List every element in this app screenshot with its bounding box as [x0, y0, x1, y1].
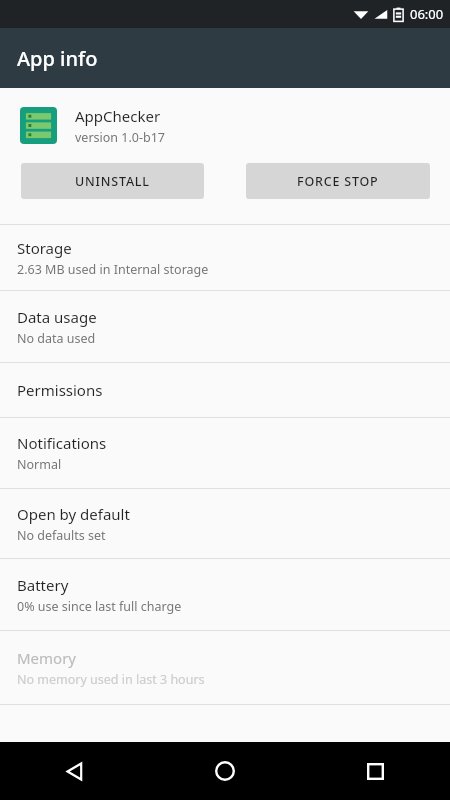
button[interactable]: Home [150, 742, 300, 800]
staticText: UNINSTALL [75, 173, 150, 190]
staticText: 0% use since last full charge [17, 598, 182, 615]
staticText: Normal [17, 456, 62, 473]
button[interactable]: Memory [0, 631, 450, 704]
button[interactable]: Open by default [0, 489, 450, 558]
button[interactable]: Data usage [0, 291, 450, 362]
button[interactable]: Permissions [0, 363, 450, 417]
staticText: No data used [17, 330, 96, 347]
staticText: Battery [17, 575, 69, 595]
staticText: No memory used in last 3 hours [17, 671, 205, 688]
staticText: 2.63 MB used in Internal storage [17, 261, 209, 278]
button[interactable]: UNINSTALL [21, 163, 204, 199]
staticText: Data usage [17, 307, 97, 327]
button[interactable]: Notifications [0, 418, 450, 488]
staticText: Storage [17, 238, 72, 258]
button[interactable]: Recent apps [300, 742, 450, 800]
staticText: No defaults set [17, 527, 106, 544]
staticText: 06:00 [410, 5, 444, 23]
button[interactable]: Battery [0, 559, 450, 630]
staticText: AppChecker [75, 106, 161, 126]
staticText: Notifications [17, 433, 107, 453]
staticText: version 1.0-b17 [75, 129, 165, 146]
staticText: Open by default [17, 504, 130, 524]
staticText: FORCE STOP [297, 173, 379, 190]
staticText: Memory [17, 648, 77, 668]
button[interactable]: Back [0, 742, 150, 800]
staticText: Permissions [17, 380, 103, 400]
staticText: App info [17, 45, 98, 72]
button[interactable]: Storage [0, 225, 450, 290]
button[interactable]: FORCE STOP [246, 163, 430, 199]
